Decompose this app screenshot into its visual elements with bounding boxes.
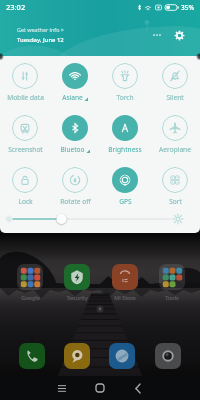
button[interactable]: GPS	[100, 167, 150, 219]
button[interactable]: Google folder	[17, 264, 43, 290]
staticText: Bluetoo	[60, 145, 85, 154]
button[interactable]: Mobile data	[0, 63, 50, 115]
button[interactable]: Brightness slider	[0, 213, 200, 229]
staticText: Google	[21, 294, 40, 301]
button[interactable]: Screenshot	[0, 115, 50, 167]
staticText: Mi Store	[114, 294, 136, 301]
button[interactable]: Home	[88, 376, 112, 400]
staticText: Sort	[169, 197, 182, 206]
button[interactable]: Sort	[150, 167, 200, 219]
staticText: Aeroplane	[159, 145, 191, 154]
staticText: Lock	[18, 197, 33, 206]
staticText: Brightness	[108, 145, 142, 154]
staticText: Asiane	[62, 93, 83, 102]
button[interactable]: Browser	[109, 343, 135, 369]
staticText: Silent	[166, 93, 184, 102]
button[interactable]: Tools folder	[159, 264, 185, 290]
button[interactable]: Phone	[19, 343, 45, 369]
staticText: 23:02	[6, 2, 26, 12]
staticText: Security	[67, 294, 88, 301]
staticText: Tuesday, June 12	[17, 36, 64, 44]
button[interactable]: Messages	[64, 343, 90, 369]
staticText: Rotate off	[60, 197, 91, 206]
staticText: Screenshot	[8, 145, 43, 154]
button[interactable]: Lock	[0, 167, 50, 219]
staticText: 35%	[181, 3, 194, 12]
button[interactable]: More options	[148, 26, 166, 44]
button[interactable]: Torch	[100, 63, 150, 115]
button[interactable]: Silent	[150, 63, 200, 115]
button[interactable]: Bluetoo	[50, 115, 100, 167]
button[interactable]: Mi Store	[112, 264, 138, 290]
staticText: Torch	[116, 93, 134, 102]
staticText: GPS	[119, 197, 132, 206]
staticText: Tools	[165, 294, 179, 301]
button[interactable]: Rotate off	[50, 167, 100, 219]
button[interactable]: Back	[126, 376, 150, 400]
button[interactable]: Brightness	[100, 115, 150, 167]
button[interactable]: Aeroplane	[150, 115, 200, 167]
button[interactable]: Settings	[170, 26, 188, 44]
button[interactable]: Camera	[155, 343, 181, 369]
button[interactable]: Asiane	[50, 63, 100, 115]
staticText: Mobile data	[7, 93, 44, 102]
button[interactable]: Security	[64, 264, 90, 290]
staticText: Get weather info >	[17, 26, 64, 33]
button[interactable]: Get weather info >	[17, 26, 148, 44]
button[interactable]: Recents	[50, 376, 74, 400]
